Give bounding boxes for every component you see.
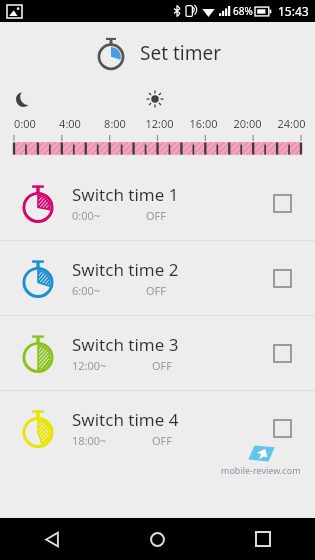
button[interactable]: Switch time 3: [0, 316, 315, 390]
staticText: mobile-review.com: [221, 464, 301, 476]
button[interactable]: Switch time 2: [0, 241, 315, 315]
button[interactable]: Enable Switch time 3: [259, 330, 305, 376]
staticText: OFF: [146, 208, 167, 223]
staticText: Switch time 2: [72, 258, 179, 281]
staticText: 12:00~: [72, 358, 107, 373]
button[interactable]: [0, 135, 315, 156]
staticText: 12:00: [145, 116, 174, 131]
button[interactable]: Home: [105, 518, 210, 560]
button[interactable]: Back: [0, 518, 105, 560]
staticText: 4:00: [59, 116, 81, 131]
button[interactable]: Enable Switch time 4: [259, 405, 305, 451]
button[interactable]: Enable Switch time 2: [259, 255, 305, 301]
staticText: 8:00: [104, 116, 126, 131]
staticText: 18:00~: [72, 433, 107, 448]
staticText: Switch time 4: [72, 408, 179, 431]
staticText: 15:43: [278, 3, 309, 19]
staticText: OFF: [146, 283, 167, 298]
button[interactable]: Switch time 4: [0, 391, 315, 465]
staticText: 16:00: [189, 116, 218, 131]
staticText: 6:00~: [72, 283, 101, 298]
staticText: 0:00: [14, 116, 36, 131]
button[interactable]: Switch time 1: [0, 166, 315, 240]
button[interactable]: Enable Switch time 1: [259, 180, 305, 226]
staticText: Switch time 1: [72, 183, 179, 206]
staticText: OFF: [152, 358, 173, 373]
staticText: 20:00: [233, 116, 262, 131]
staticText: 24:00: [277, 116, 306, 131]
staticText: 0:00~: [72, 208, 101, 223]
staticText: Switch time 3: [72, 333, 179, 356]
staticText: OFF: [152, 433, 173, 448]
button[interactable]: Recent apps: [210, 518, 315, 560]
staticText: 68%: [233, 4, 253, 18]
staticText: Set timer: [140, 40, 222, 66]
